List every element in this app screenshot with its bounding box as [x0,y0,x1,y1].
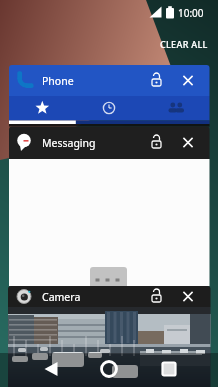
staticText: CLEAR ALL [160,38,208,50]
button[interactable] [9,65,209,124]
button[interactable] [76,96,143,120]
button[interactable] [8,286,210,353]
staticText: Messaging [42,136,96,150]
staticText: Camera [42,290,81,304]
button[interactable] [143,96,209,120]
button[interactable] [9,96,76,120]
button[interactable] [38,355,66,383]
staticText: 10:00 [178,6,204,20]
button[interactable] [180,288,197,305]
button[interactable] [9,126,209,286]
button[interactable]: CLEAR ALL [156,34,204,46]
button[interactable] [95,355,123,383]
button[interactable] [180,72,197,89]
staticText: Phone [42,74,74,88]
button[interactable] [180,134,197,151]
button[interactable] [155,355,183,383]
